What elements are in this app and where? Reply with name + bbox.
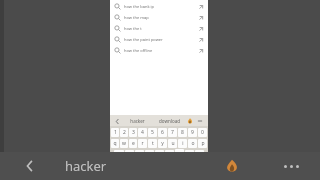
button[interactable]: hacker (121, 115, 153, 126)
staticText: s (128, 151, 131, 158)
button[interactable]: More options (262, 152, 320, 180)
button[interactable]: 2 (120, 128, 128, 137)
button[interactable]: 3 (129, 128, 137, 137)
staticText: 1 (114, 129, 117, 136)
button[interactable]: Trending (202, 152, 262, 180)
staticText: hacker (65, 157, 107, 175)
staticText: how the t (124, 26, 142, 31)
button[interactable]: a (114, 150, 124, 159)
button[interactable]: r (138, 139, 147, 148)
button[interactable]: how the t (110, 23, 208, 34)
button[interactable]: g (155, 150, 164, 159)
button[interactable]: how the map (110, 12, 208, 23)
button[interactable]: q (111, 139, 119, 148)
button[interactable]: 8 (178, 128, 187, 137)
button[interactable]: 1 (111, 128, 119, 137)
button[interactable]: u (168, 139, 177, 148)
staticText: e (132, 140, 135, 147)
button[interactable]: f (145, 150, 154, 159)
staticText: how the map (124, 15, 149, 20)
button[interactable]: j (175, 150, 184, 159)
staticText: 6 (161, 129, 164, 136)
staticText: o (191, 140, 195, 147)
button[interactable]: Keyboard options (195, 116, 205, 126)
button[interactable]: download (153, 115, 185, 126)
button[interactable]: 9 (188, 128, 197, 137)
staticText: a (118, 151, 121, 158)
staticText: 2 (123, 129, 126, 136)
staticText: r (141, 140, 144, 147)
button[interactable]: how the offline (110, 45, 208, 56)
button[interactable]: p (198, 139, 207, 148)
button[interactable]: 0 (198, 128, 207, 137)
staticText: hacker (130, 118, 145, 124)
staticText: 5 (151, 129, 154, 136)
staticText: how the paint power (124, 37, 163, 42)
staticText: h (168, 151, 172, 158)
button[interactable]: 4 (138, 128, 147, 137)
button[interactable]: l (195, 150, 204, 159)
staticText: k (188, 151, 191, 158)
button[interactable]: how the paint power (110, 34, 208, 45)
staticText: q (113, 140, 117, 147)
staticText: t (152, 140, 154, 147)
button[interactable]: i (178, 139, 187, 148)
button[interactable]: 5 (148, 128, 157, 137)
staticText: y (161, 140, 164, 147)
staticText: 4 (141, 129, 144, 136)
button[interactable]: 7 (168, 128, 177, 137)
staticText: 8 (181, 129, 184, 136)
staticText: how the bank ip (124, 4, 155, 9)
button[interactable]: w (120, 139, 128, 148)
button[interactable]: t (148, 139, 157, 148)
button[interactable]: o (188, 139, 197, 148)
staticText: i (182, 140, 184, 147)
button[interactable]: Previous suggestions (113, 117, 121, 125)
button[interactable]: h (165, 150, 174, 159)
button[interactable]: Back (0, 152, 60, 180)
button[interactable]: Voice input (185, 116, 195, 126)
staticText: g (158, 151, 162, 158)
staticText: 3 (132, 129, 135, 136)
button[interactable]: k (185, 150, 194, 159)
button[interactable]: how the bank ip (110, 1, 208, 12)
staticText: how the offline (124, 48, 153, 53)
staticText: download (159, 118, 180, 124)
staticText: d (138, 151, 142, 158)
button[interactable]: hacker (60, 152, 112, 180)
staticText: f (149, 151, 151, 158)
staticText: l (199, 151, 201, 158)
staticText: w (122, 140, 126, 147)
button[interactable]: s (125, 150, 134, 159)
button[interactable]: 6 (158, 128, 167, 137)
button[interactable]: y (158, 139, 167, 148)
button[interactable]: d (135, 150, 144, 159)
staticText: j (179, 151, 181, 158)
button[interactable]: e (129, 139, 137, 148)
staticText: 7 (171, 129, 174, 136)
